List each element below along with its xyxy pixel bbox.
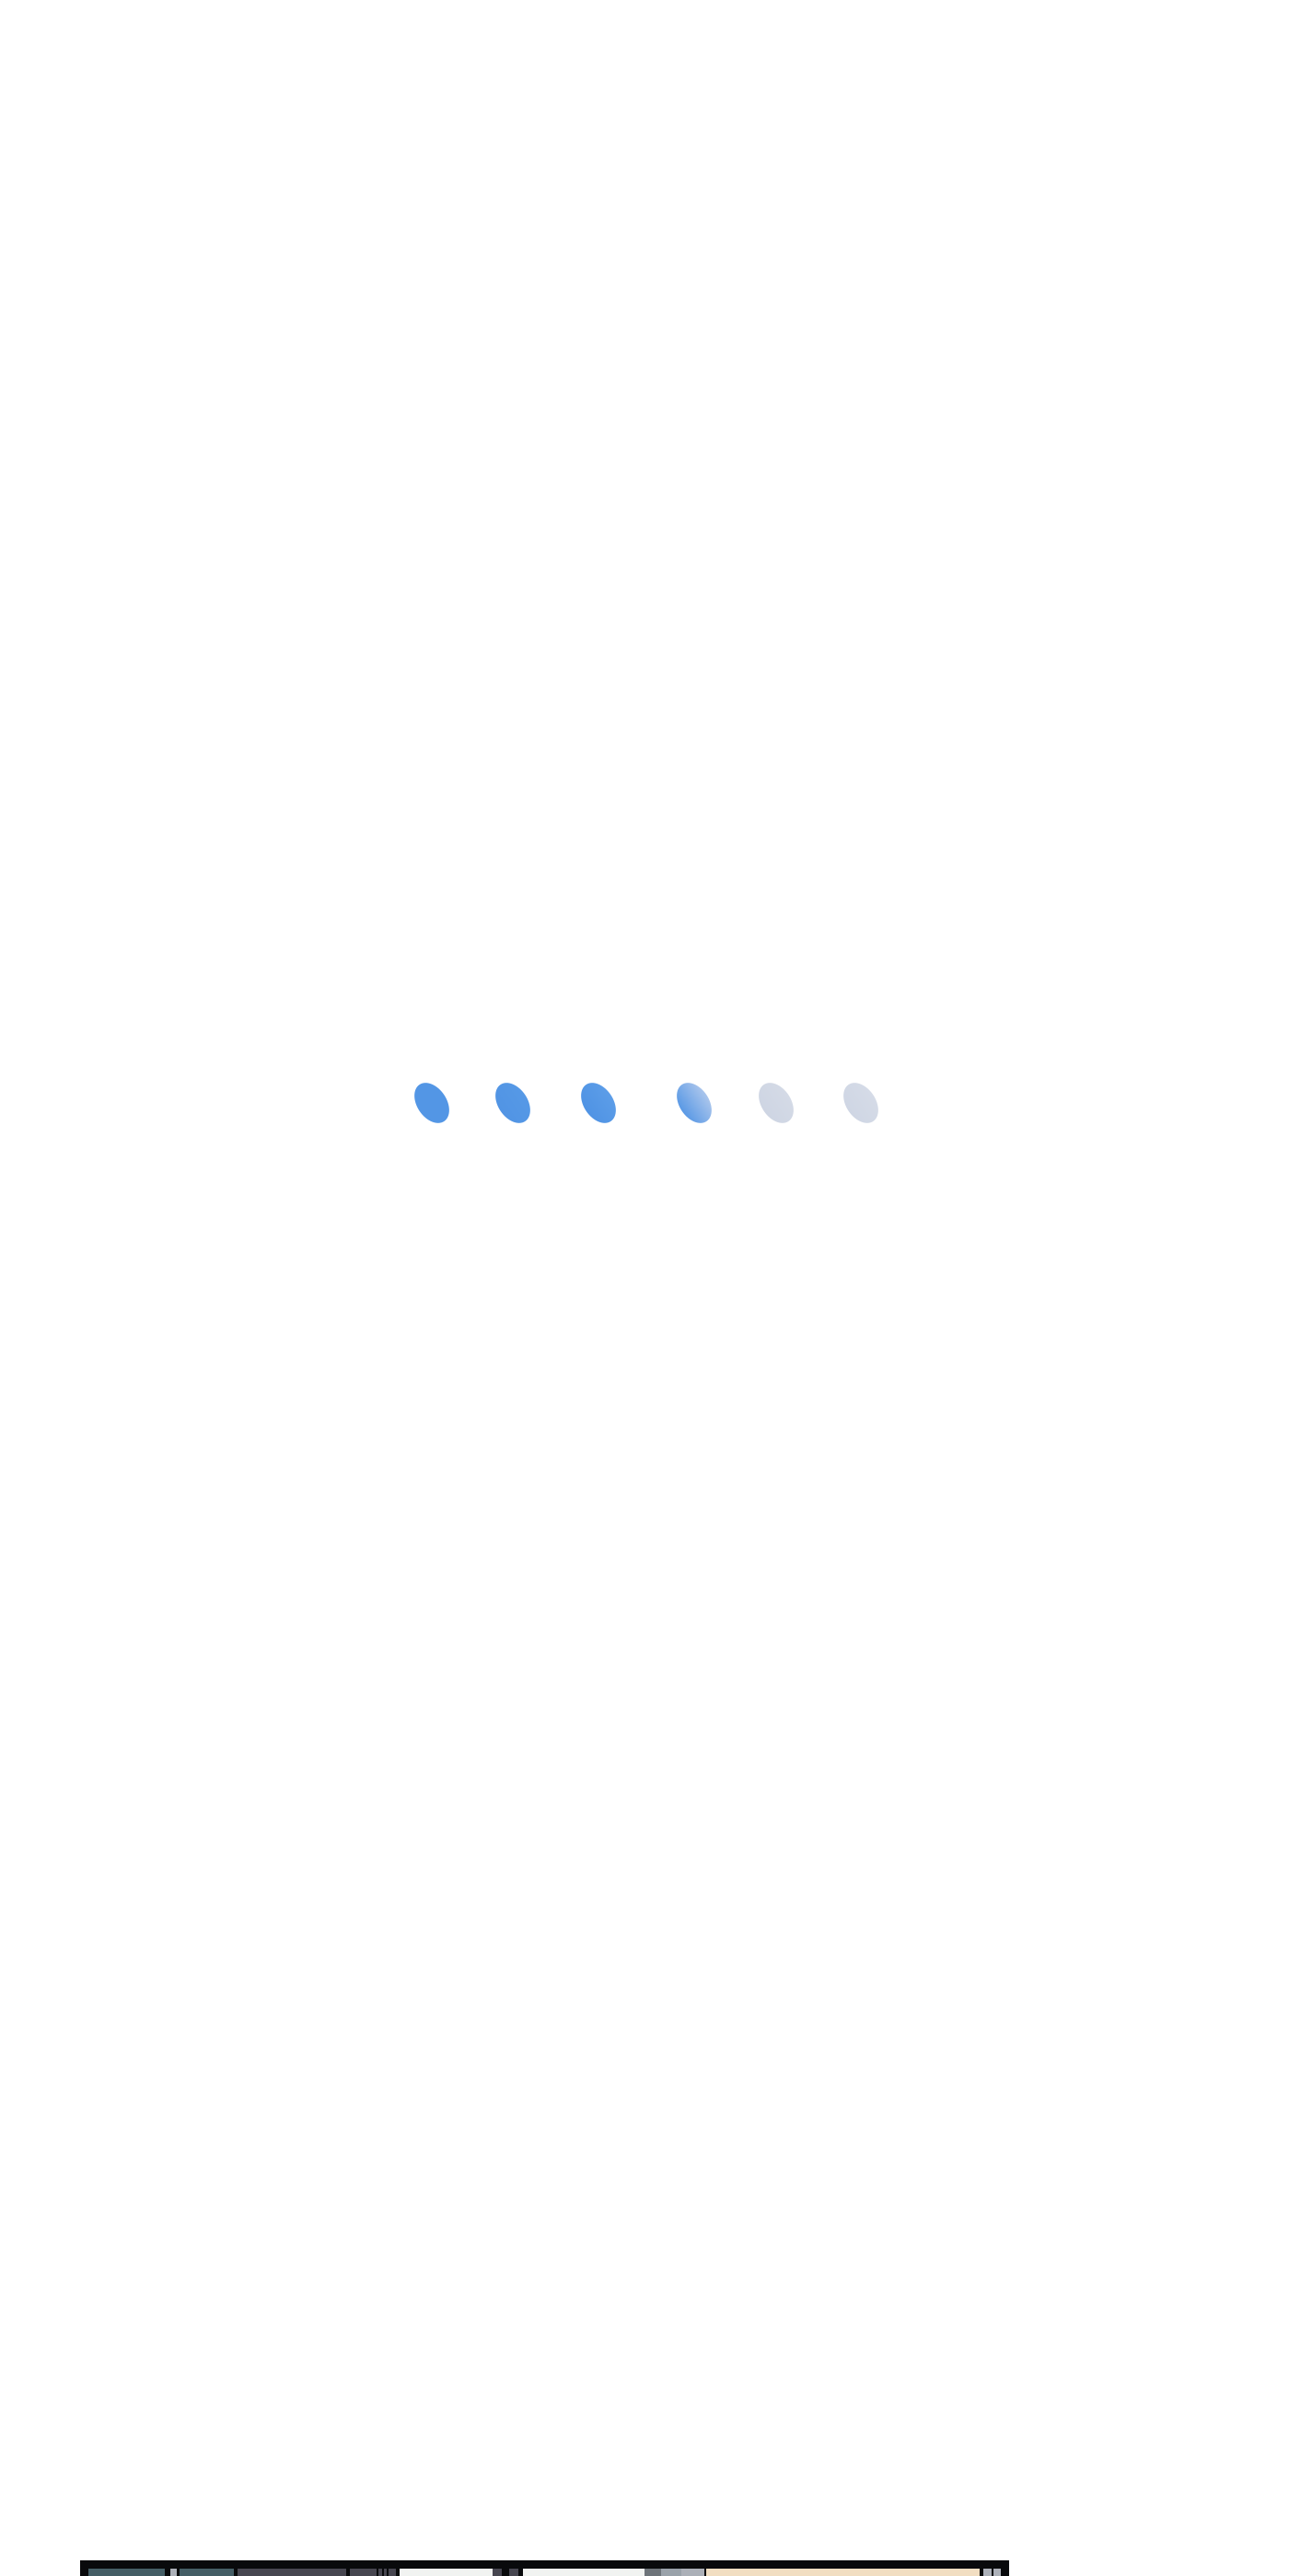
button[interactable]: Episode page 1 — [80, 2560, 1009, 2576]
